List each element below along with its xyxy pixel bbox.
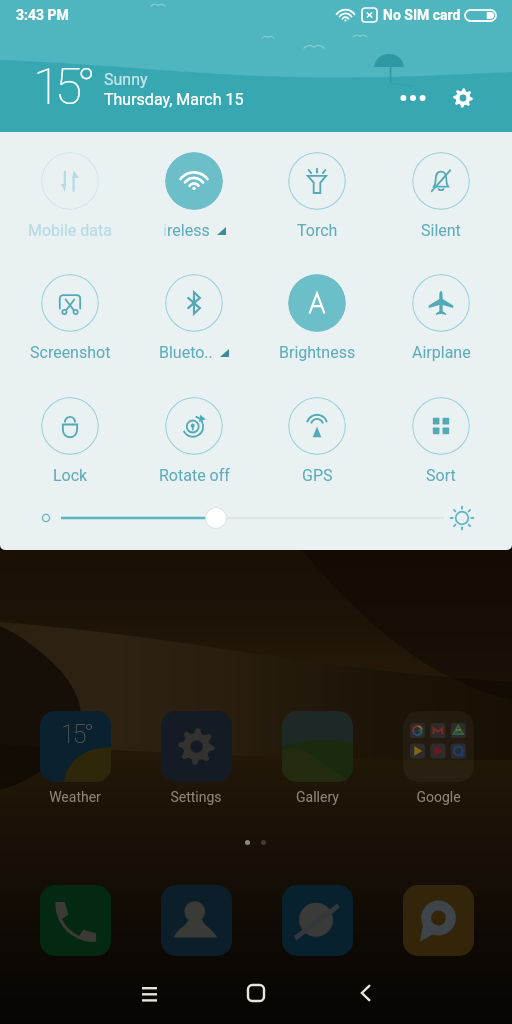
staticText: 15° — [33, 58, 91, 117]
button[interactable]: GPS — [288, 397, 346, 455]
button[interactable]: Recents — [123, 968, 175, 1020]
button[interactable]: Settings — [441, 76, 485, 120]
button[interactable]: Contacts — [161, 885, 232, 956]
staticText: Blueto.. — [159, 343, 213, 362]
staticText: Sort — [426, 466, 456, 485]
button[interactable]: Torch — [288, 152, 346, 210]
staticText: Thursday, March 15 — [104, 90, 244, 109]
button[interactable]: Messages — [403, 885, 474, 956]
button[interactable]: Google — [403, 711, 474, 782]
staticText: Sunny — [104, 70, 148, 89]
staticText: Screenshot — [30, 343, 111, 362]
staticText: 3:43 PM — [16, 7, 69, 23]
button[interactable]: Wireless — [165, 152, 223, 210]
button[interactable]: Blueto.. — [165, 274, 223, 332]
staticText: Torch — [297, 221, 338, 240]
button[interactable]: Screenshot — [41, 274, 99, 332]
staticText: Rotate off — [159, 466, 230, 485]
staticText: Gallery — [296, 789, 339, 805]
staticText: Weather — [49, 789, 101, 805]
button[interactable]: Home — [230, 967, 282, 1019]
button[interactable]: Sort — [412, 397, 470, 455]
staticText: reless — [167, 221, 210, 240]
button[interactable]: Rotate off — [165, 397, 223, 455]
button[interactable]: Gallery — [282, 711, 353, 782]
staticText: No SIM card — [383, 7, 461, 23]
staticText: Mobile data — [28, 221, 112, 240]
button[interactable]: Mobile data — [41, 152, 99, 210]
staticText: Silent — [421, 221, 461, 240]
button[interactable]: Brightness — [288, 274, 346, 332]
button[interactable]: Phone — [40, 885, 111, 956]
button[interactable]: Silent — [412, 152, 470, 210]
button[interactable]: Airplane — [412, 274, 470, 332]
staticText: i — [163, 221, 167, 240]
staticText: Google — [416, 789, 461, 805]
button[interactable]: More options — [391, 76, 435, 120]
staticText: 15° — [61, 720, 92, 749]
button[interactable]: Browser — [282, 885, 353, 956]
button[interactable]: Lock — [41, 397, 99, 455]
staticText: Settings — [170, 789, 222, 805]
staticText: GPS — [302, 466, 333, 485]
button[interactable]: Back — [339, 967, 391, 1019]
staticText: Brightness — [279, 343, 356, 362]
staticText: Lock — [53, 466, 88, 485]
button[interactable]: Settings — [161, 711, 232, 782]
staticText: Airplane — [412, 343, 471, 362]
button[interactable]: Weather — [40, 711, 111, 782]
